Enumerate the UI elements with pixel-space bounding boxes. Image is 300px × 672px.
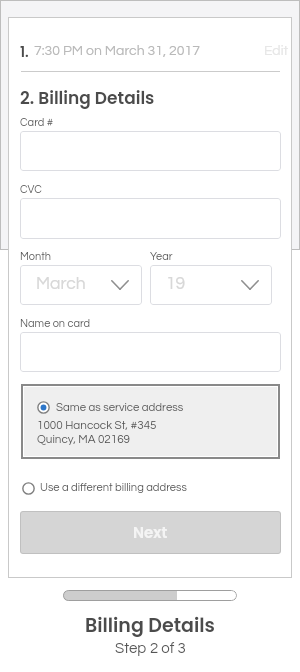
button[interactable]: 19 <box>150 265 272 305</box>
staticText: March <box>36 275 86 293</box>
button[interactable]: Selected option <box>24 387 277 456</box>
button[interactable] <box>20 198 281 239</box>
staticText: 2. Billing Details <box>20 86 155 110</box>
staticText: Same as service address <box>56 402 184 414</box>
button[interactable] <box>20 332 281 372</box>
staticText: Next <box>133 522 168 543</box>
staticText: Edit <box>264 44 289 58</box>
staticText: CVC <box>20 184 42 195</box>
staticText: Step 2 of 3 <box>115 641 186 656</box>
staticText: 7:30 PM on March 31, 2017 <box>34 44 200 58</box>
staticText: Month <box>20 251 51 262</box>
button[interactable]: Edit <box>264 44 289 58</box>
other: Unselected option <box>22 482 35 495</box>
staticText: 19 <box>166 275 186 293</box>
staticText: 1. <box>20 42 29 60</box>
other: Selected option <box>37 401 50 414</box>
button[interactable]: March <box>20 265 142 305</box>
staticText: Year <box>150 251 173 262</box>
staticText: Use a different billing address <box>40 482 187 494</box>
staticText: Quincy, MA 02169 <box>37 433 131 445</box>
staticText: 1000 Hancock St, #345 <box>37 419 157 431</box>
button[interactable]: Next <box>20 511 281 554</box>
staticText: Billing Details <box>85 612 215 639</box>
staticText: Name on card <box>20 318 91 329</box>
button[interactable]: Unselected option <box>22 476 222 500</box>
button[interactable] <box>20 131 281 171</box>
staticText: Card # <box>20 117 54 128</box>
